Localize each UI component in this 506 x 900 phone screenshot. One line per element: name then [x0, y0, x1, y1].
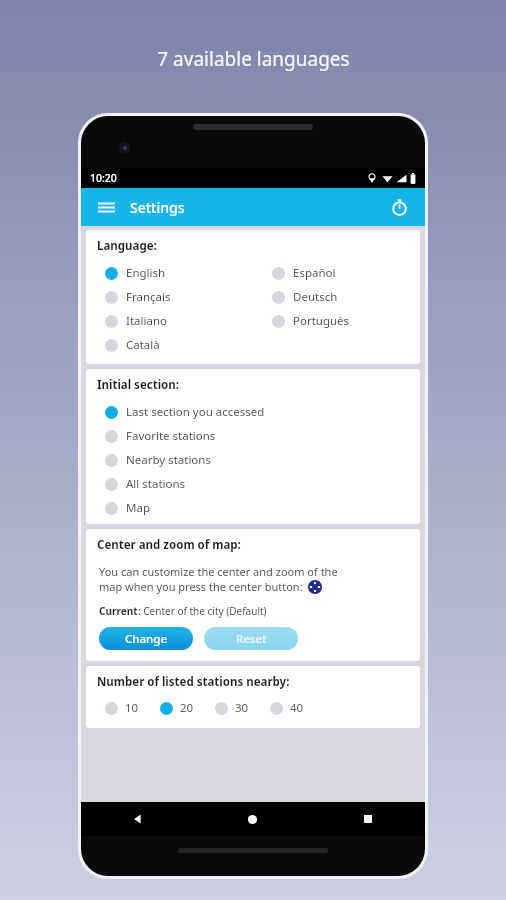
- button[interactable]: Italiano: [86, 309, 253, 333]
- staticText: Current: [99, 604, 138, 618]
- staticText: Settings: [130, 198, 185, 217]
- button[interactable]: Favorite stations: [86, 424, 420, 448]
- button[interactable]: Deutsch: [253, 285, 420, 309]
- staticText: : Center of the city (Default): [138, 604, 267, 618]
- button[interactable]: Portugués: [253, 309, 420, 333]
- button[interactable]: Last section you accessed: [86, 400, 420, 424]
- staticText: Nearby stations: [126, 452, 211, 468]
- staticText: Center and zoom of map:: [97, 537, 241, 553]
- staticText: Deutsch: [293, 289, 338, 305]
- button[interactable]: 10: [99, 696, 145, 720]
- staticText: Portugués: [293, 313, 350, 329]
- staticText: Map: [126, 500, 150, 516]
- staticText: 40: [290, 700, 304, 716]
- staticText: English: [126, 265, 166, 281]
- staticText: 7 available languages: [157, 46, 350, 72]
- staticText: Català: [126, 337, 160, 353]
- button[interactable]: Back: [81, 802, 195, 836]
- button[interactable]: 40: [264, 696, 310, 720]
- button[interactable]: 20: [154, 696, 200, 720]
- staticText: Initial section:: [97, 377, 180, 393]
- staticText: Español: [293, 265, 336, 281]
- button[interactable]: Change: [99, 627, 193, 650]
- staticText: Reset: [236, 631, 267, 647]
- button[interactable]: Español: [253, 261, 420, 285]
- button[interactable]: Reset: [204, 627, 298, 650]
- staticText: 20: [180, 700, 194, 716]
- staticText: Change: [125, 631, 168, 647]
- staticText: Last section you accessed: [126, 404, 265, 420]
- button[interactable]: 30: [209, 696, 255, 720]
- staticText: Number of listed stations nearby:: [97, 674, 290, 690]
- staticText: 30: [235, 700, 249, 716]
- staticText: You can customize the center and zoom of…: [99, 564, 338, 579]
- staticText: Italiano: [126, 313, 167, 329]
- button[interactable]: English: [86, 261, 253, 285]
- staticText: 10:20: [90, 171, 117, 185]
- button[interactable]: All stations: [86, 472, 420, 496]
- staticText: Language:: [97, 238, 157, 254]
- button[interactable]: Timer: [385, 193, 413, 221]
- button[interactable]: Recent apps: [310, 802, 425, 836]
- staticText: 10: [125, 700, 139, 716]
- staticText: map when you press the center button:: [99, 579, 303, 594]
- staticText: All stations: [126, 476, 186, 492]
- button[interactable]: Home: [195, 802, 310, 836]
- button[interactable]: Map: [86, 496, 420, 520]
- button[interactable]: Open navigation menu: [93, 194, 119, 220]
- staticText: Français: [126, 289, 171, 305]
- staticText: Favorite stations: [126, 428, 216, 444]
- button[interactable]: Français: [86, 285, 253, 309]
- button[interactable]: Nearby stations: [86, 448, 420, 472]
- button[interactable]: Català: [86, 333, 253, 357]
